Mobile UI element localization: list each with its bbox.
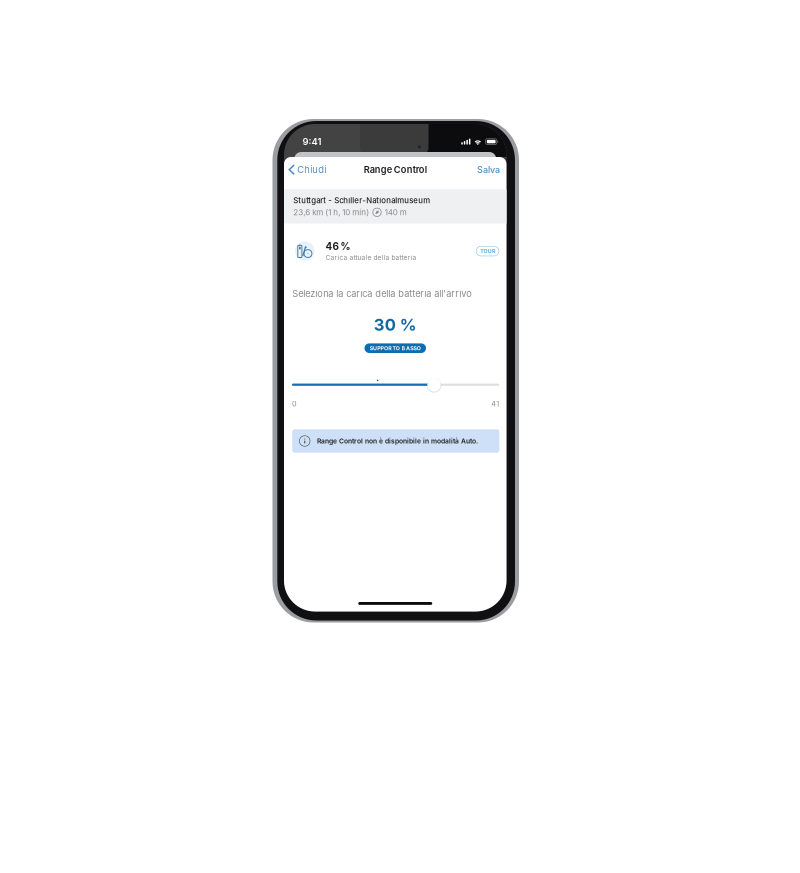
staticText: TOUR bbox=[480, 248, 495, 254]
staticText: Range Control bbox=[364, 164, 427, 175]
staticText: BASSO bbox=[402, 345, 421, 351]
staticText: 41 bbox=[491, 400, 499, 408]
staticText: 0 bbox=[292, 400, 297, 408]
staticText: Salva bbox=[477, 164, 500, 175]
staticText: 140 m bbox=[385, 207, 407, 217]
button[interactable]: Salva bbox=[471, 158, 506, 181]
staticText: Seleziona la carica della batteria all'a… bbox=[292, 288, 472, 299]
staticText: 46 % bbox=[326, 240, 351, 252]
staticText: SUPPORTO bbox=[370, 345, 400, 351]
staticText: 23,6 km (1 h, 10 min) bbox=[293, 207, 369, 217]
staticText: Carica attuale della batteria bbox=[326, 254, 417, 262]
staticText: Range Control non è disponibile in modal… bbox=[317, 437, 478, 445]
staticText: 30 % bbox=[374, 315, 417, 335]
staticText: Stuttgart - Schiller-Nationalmuseum bbox=[293, 196, 430, 205]
button[interactable]: Chiudi bbox=[284, 158, 332, 181]
staticText: 9:41 bbox=[302, 136, 321, 147]
staticText: Chiudi bbox=[297, 164, 326, 175]
